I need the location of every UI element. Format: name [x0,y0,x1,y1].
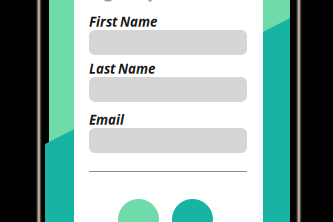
staticText: Last Name [89,60,155,77]
staticText: First Name [89,13,157,30]
staticText: Sign up [87,0,162,2]
button[interactable]: First Name [89,15,247,55]
button[interactable]: Continue with Google [172,199,213,222]
button[interactable]: Continue with Apple [118,199,159,222]
button[interactable]: Email [89,113,247,153]
button[interactable]: Last Name [89,62,247,102]
staticText: Email [89,111,124,128]
